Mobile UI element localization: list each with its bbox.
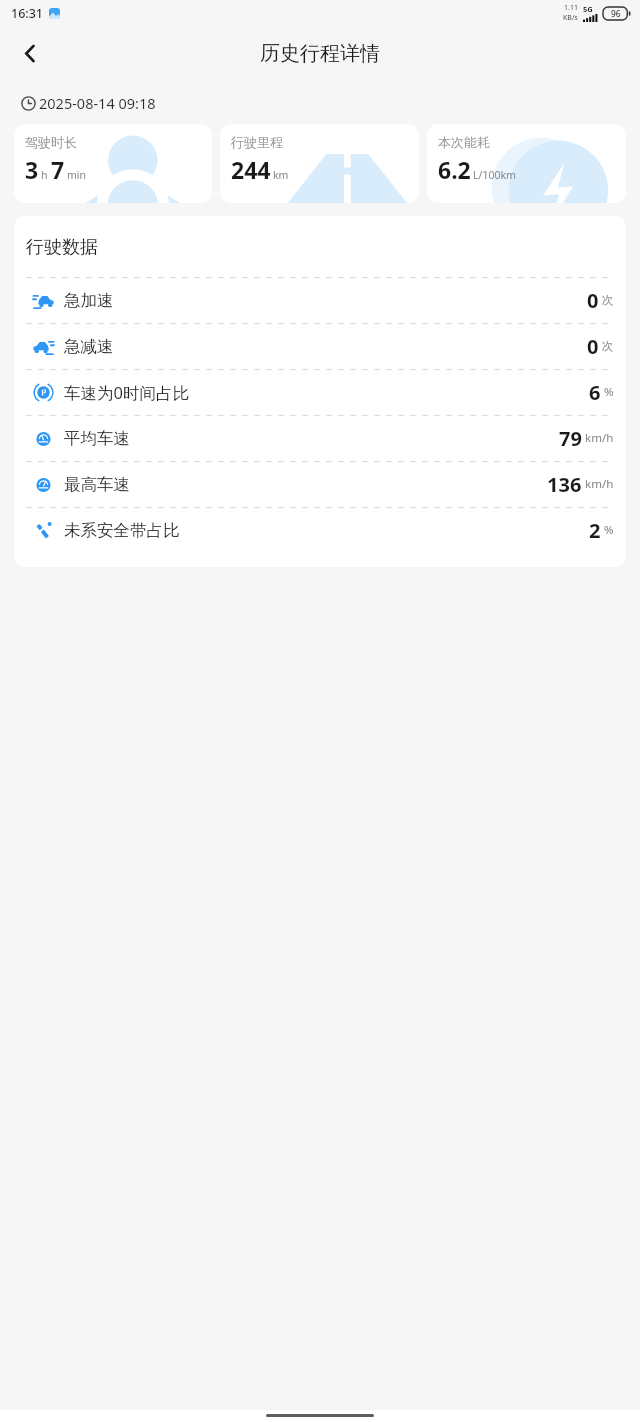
staticText: 5G <box>583 4 593 14</box>
button[interactable]: 行驶里程 <box>220 124 419 203</box>
staticText: 急减速 <box>64 336 114 357</box>
button[interactable]: 未系安全带占比 <box>26 508 614 553</box>
staticText: 16:31 <box>11 5 44 22</box>
staticText: 79 <box>559 425 582 452</box>
staticText: 7 <box>51 154 65 185</box>
staticText: min <box>67 168 87 182</box>
button[interactable]: 最高车速 <box>26 462 614 507</box>
button[interactable]: 车速为0时间占比 <box>26 370 614 415</box>
staticText: 次 <box>602 293 614 307</box>
staticText: km/h <box>585 476 614 492</box>
staticText: 行驶数据 <box>26 236 98 259</box>
button[interactable]: 急减速 <box>26 324 614 369</box>
staticText: 行驶里程 <box>231 134 283 150</box>
staticText: 3 <box>25 154 39 185</box>
staticText: h <box>41 168 48 182</box>
staticText: 急加速 <box>64 290 114 311</box>
staticText: 2 <box>589 517 601 544</box>
staticText: 次 <box>602 339 614 353</box>
staticText: KB/s <box>563 13 578 23</box>
staticText: 0 <box>587 333 599 360</box>
button[interactable]: 平均车速 <box>26 416 614 461</box>
staticText: 2025-08-14 09:18 <box>39 93 156 113</box>
button[interactable]: 驾驶时长 <box>14 124 212 203</box>
button[interactable]: 本次能耗 <box>427 124 626 203</box>
staticText: 本次能耗 <box>438 134 490 150</box>
staticText: L/100km <box>473 168 516 182</box>
staticText: 最高车速 <box>64 474 130 495</box>
staticText: km/h <box>585 430 614 446</box>
staticText: 驾驶时长 <box>25 134 77 150</box>
staticText: % <box>604 522 614 538</box>
staticText: 1.11 <box>564 3 578 13</box>
button[interactable]: Back <box>8 31 52 75</box>
staticText: 平均车速 <box>64 428 130 449</box>
button[interactable]: 急加速 <box>26 278 614 323</box>
staticText: 未系安全带占比 <box>64 520 180 541</box>
staticText: 车速为0时间占比 <box>64 381 189 404</box>
staticText: 244 <box>231 154 271 185</box>
staticText: % <box>604 384 614 400</box>
staticText: km <box>273 168 289 182</box>
staticText: 96 <box>611 8 621 20</box>
staticText: 136 <box>547 471 582 498</box>
staticText: 历史行程详情 <box>260 41 380 66</box>
staticText: 6 <box>589 379 601 406</box>
staticText: 6.2 <box>438 154 471 185</box>
staticText: 0 <box>587 287 599 314</box>
